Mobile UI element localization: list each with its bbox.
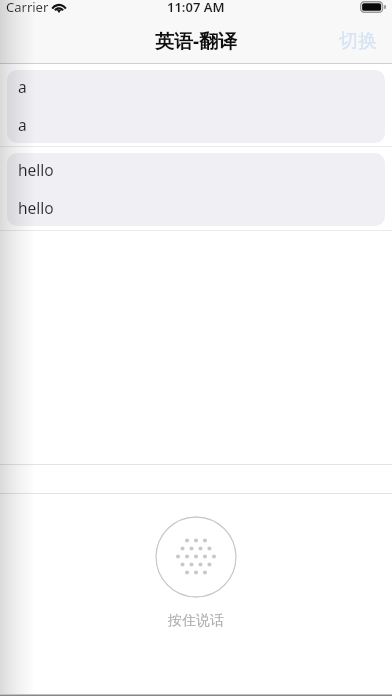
button[interactable]: 按住说话 — [155, 516, 237, 598]
button[interactable]: hello — [7, 153, 385, 226]
staticText: 切换 — [339, 29, 377, 53]
button[interactable]: 切换 — [325, 21, 392, 63]
button[interactable]: a — [7, 70, 385, 143]
staticText: 英语-翻译 — [155, 28, 238, 54]
staticText: 11:07 AM — [167, 0, 225, 16]
staticText: a — [18, 76, 27, 97]
staticText: Carrier — [6, 0, 49, 16]
staticText: 按住说话 — [168, 612, 224, 630]
staticText: hello — [18, 197, 54, 218]
staticText: a — [18, 114, 27, 135]
staticText: hello — [18, 159, 54, 180]
